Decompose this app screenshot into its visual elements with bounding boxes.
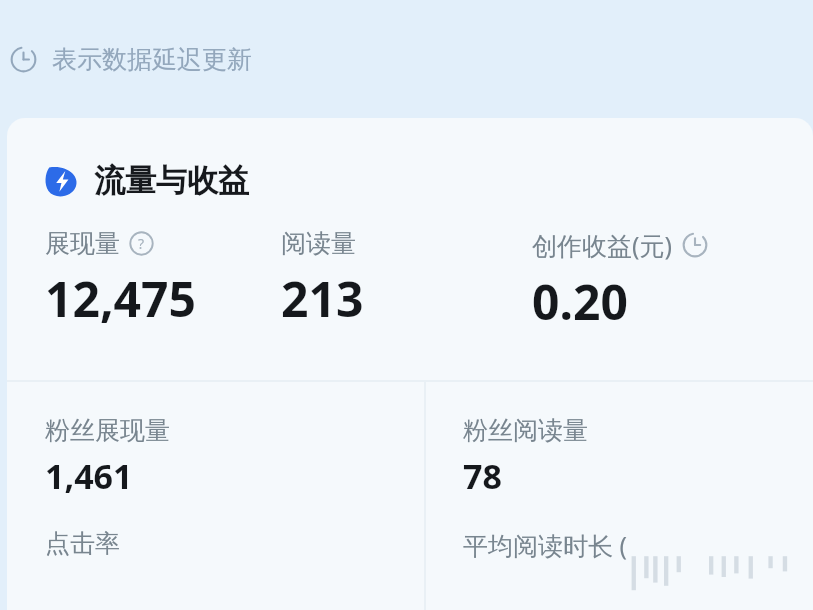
staticText: 12,475 bbox=[45, 266, 196, 331]
staticText: 流量与收益 bbox=[94, 161, 249, 200]
button[interactable]: 粉丝展现量 bbox=[7, 382, 424, 499]
button[interactable]: Delayed data bbox=[0, 0, 813, 118]
other: Delayed data bbox=[10, 46, 37, 73]
button[interactable]: 粉丝阅读量 bbox=[426, 382, 813, 499]
button[interactable]: 创作收益(元) bbox=[532, 228, 813, 334]
staticText: 78 bbox=[463, 453, 502, 499]
staticText: 213 bbox=[281, 266, 364, 331]
staticText: 1,461 bbox=[45, 453, 133, 499]
staticText: 平均阅读时长 ( bbox=[463, 528, 628, 562]
button[interactable]: 展现量 bbox=[7, 228, 281, 331]
button[interactable]: 阅读量 bbox=[281, 228, 532, 331]
button[interactable]: 流量与收益 bbox=[7, 118, 813, 200]
staticText: 点击率 bbox=[45, 528, 120, 559]
staticText: 阅读量 bbox=[281, 228, 356, 259]
staticText: 创作收益(元) bbox=[532, 228, 673, 262]
staticText: 展现量 bbox=[45, 228, 120, 259]
staticText: 0.20 bbox=[532, 269, 628, 334]
button[interactable]: 平均阅读时长 ( bbox=[426, 528, 813, 562]
staticText: 粉丝阅读量 bbox=[463, 415, 588, 446]
button[interactable]: 点击率 bbox=[7, 528, 424, 559]
other: Delayed data bbox=[682, 232, 708, 258]
staticText: ? bbox=[138, 234, 145, 253]
staticText: 表示数据延迟更新 bbox=[52, 44, 252, 75]
staticText: 粉丝展现量 bbox=[45, 415, 170, 446]
other: Help bbox=[129, 231, 154, 256]
